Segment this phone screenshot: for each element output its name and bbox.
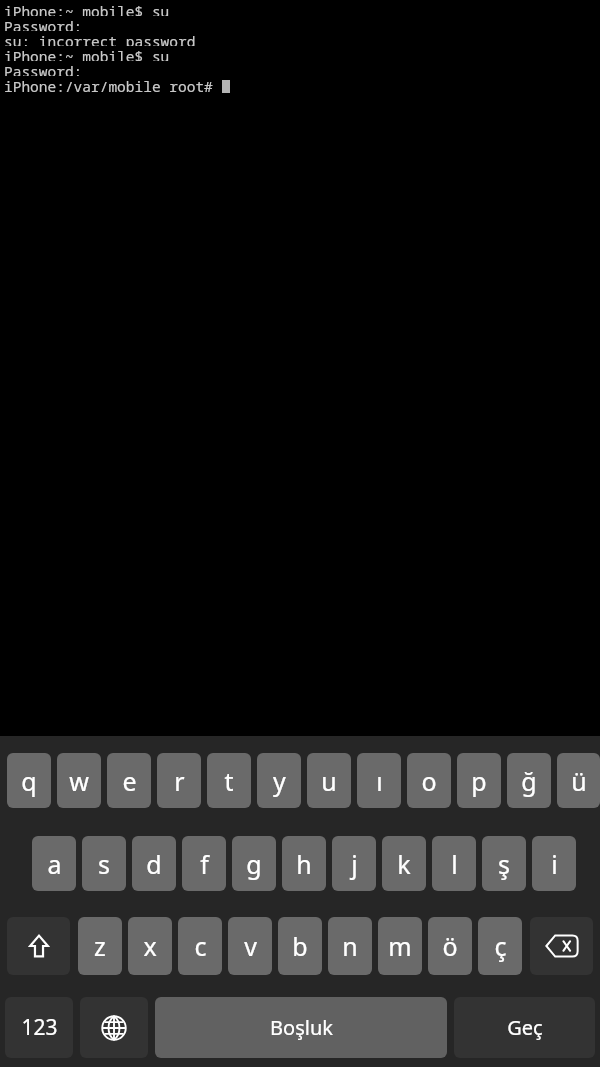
staticText: ğ xyxy=(521,764,537,798)
staticText: d xyxy=(146,847,162,881)
button[interactable]: t xyxy=(207,753,251,808)
button[interactable]: p xyxy=(457,753,501,808)
staticText: i xyxy=(551,847,558,881)
button[interactable]: Shift xyxy=(7,917,70,975)
staticText: iPhone:~ mobile$ su xyxy=(4,46,170,61)
button[interactable]: n xyxy=(328,917,372,975)
button[interactable]: d xyxy=(132,836,176,891)
staticText: r xyxy=(174,764,185,798)
staticText: f xyxy=(200,847,209,881)
button[interactable]: Boşluk xyxy=(155,997,447,1058)
staticText: iPhone:/var/mobile root# xyxy=(4,76,222,96)
button[interactable]: b xyxy=(278,917,322,975)
staticText: c xyxy=(194,929,207,963)
button[interactable]: ı xyxy=(357,753,401,808)
staticText: q xyxy=(21,764,37,798)
staticText: ç xyxy=(494,929,507,963)
button[interactable]: 123 xyxy=(5,997,73,1058)
staticText: n xyxy=(342,929,358,963)
staticText: z xyxy=(94,929,106,963)
staticText: b xyxy=(292,929,308,963)
button[interactable]: i xyxy=(532,836,576,891)
staticText: Boşluk xyxy=(270,1014,333,1041)
button[interactable]: ö xyxy=(428,917,472,975)
staticText: 123 xyxy=(21,1013,58,1042)
staticText: v xyxy=(244,929,257,963)
staticText: w xyxy=(69,764,89,798)
button[interactable]: g xyxy=(232,836,276,891)
staticText: s xyxy=(98,847,110,881)
staticText: j xyxy=(351,847,358,881)
button[interactable]: Geç xyxy=(454,997,595,1058)
button[interactable]: w xyxy=(57,753,101,808)
staticText: e xyxy=(122,764,137,798)
staticText: su: incorrect password xyxy=(4,31,196,46)
button[interactable]: k xyxy=(382,836,426,891)
button[interactable]: x xyxy=(128,917,172,975)
staticText: l xyxy=(451,847,458,881)
staticText: ş xyxy=(498,847,510,881)
button[interactable]: u xyxy=(307,753,351,808)
staticText: iPhone:~ mobile$ su xyxy=(4,1,170,16)
button[interactable]: e xyxy=(107,753,151,808)
staticText: a xyxy=(47,847,62,881)
button[interactable]: y xyxy=(257,753,301,808)
button[interactable]: j xyxy=(332,836,376,891)
staticText: Password: xyxy=(4,16,83,31)
staticText: Password: xyxy=(4,61,83,76)
button[interactable]: z xyxy=(78,917,122,975)
button[interactable]: Backspace xyxy=(530,917,593,975)
staticText: ö xyxy=(442,929,458,963)
button[interactable]: o xyxy=(407,753,451,808)
staticText: y xyxy=(273,764,286,798)
button[interactable]: ş xyxy=(482,836,526,891)
staticText: h xyxy=(296,847,312,881)
button[interactable]: ç xyxy=(478,917,522,975)
staticText: o xyxy=(421,764,437,798)
button[interactable]: r xyxy=(157,753,201,808)
button[interactable]: s xyxy=(82,836,126,891)
staticText: t xyxy=(224,764,234,798)
button[interactable]: m xyxy=(378,917,422,975)
staticText: u xyxy=(321,764,337,798)
staticText: x xyxy=(143,929,157,963)
staticText: g xyxy=(246,847,262,881)
button[interactable]: q xyxy=(7,753,51,808)
button[interactable]: v xyxy=(228,917,272,975)
button[interactable]: l xyxy=(432,836,476,891)
staticText: Geç xyxy=(507,1014,543,1041)
staticText: ı xyxy=(376,764,383,798)
staticText: m xyxy=(388,929,412,963)
staticText: k xyxy=(397,847,411,881)
button[interactable]: h xyxy=(282,836,326,891)
staticText: ü xyxy=(571,764,587,798)
button[interactable]: Next keyboard xyxy=(80,997,148,1058)
button: q xyxy=(0,736,600,1067)
button[interactable]: ü xyxy=(557,753,600,808)
button[interactable]: c xyxy=(178,917,222,975)
button[interactable]: a xyxy=(32,836,76,891)
button[interactable]: f xyxy=(182,836,226,891)
button[interactable]: ğ xyxy=(507,753,551,808)
staticText: p xyxy=(471,764,487,798)
